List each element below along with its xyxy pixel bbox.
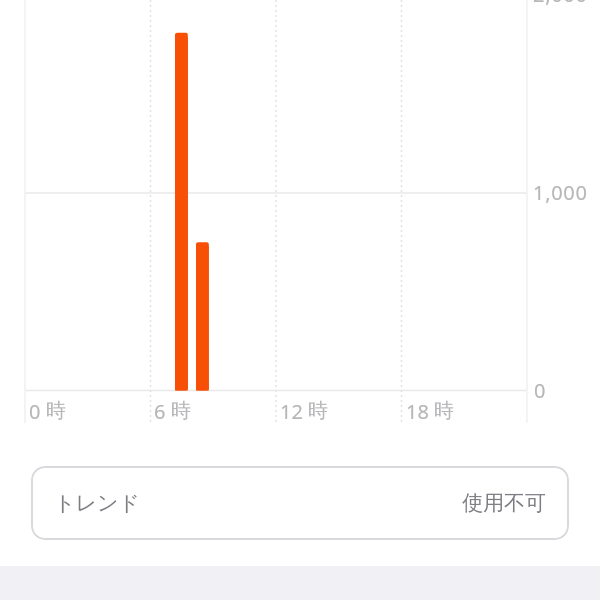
staticText: 2,000 bbox=[533, 0, 588, 8]
staticText: 6 bbox=[154, 398, 166, 425]
staticText: トレンド bbox=[54, 490, 140, 516]
staticText: 0 bbox=[534, 377, 546, 404]
staticText: 12 bbox=[280, 398, 303, 425]
staticText: 時 bbox=[308, 398, 328, 423]
staticText: 18 bbox=[406, 398, 429, 425]
button[interactable]: トレンド 使用不可 bbox=[31, 466, 569, 540]
staticText: 1,000 bbox=[533, 179, 588, 206]
staticText: 時 bbox=[171, 398, 191, 423]
staticText: 0 bbox=[29, 398, 41, 425]
staticText: 時 bbox=[434, 398, 454, 423]
staticText: 時 bbox=[46, 398, 66, 423]
staticText: 使用不可 bbox=[462, 490, 546, 516]
